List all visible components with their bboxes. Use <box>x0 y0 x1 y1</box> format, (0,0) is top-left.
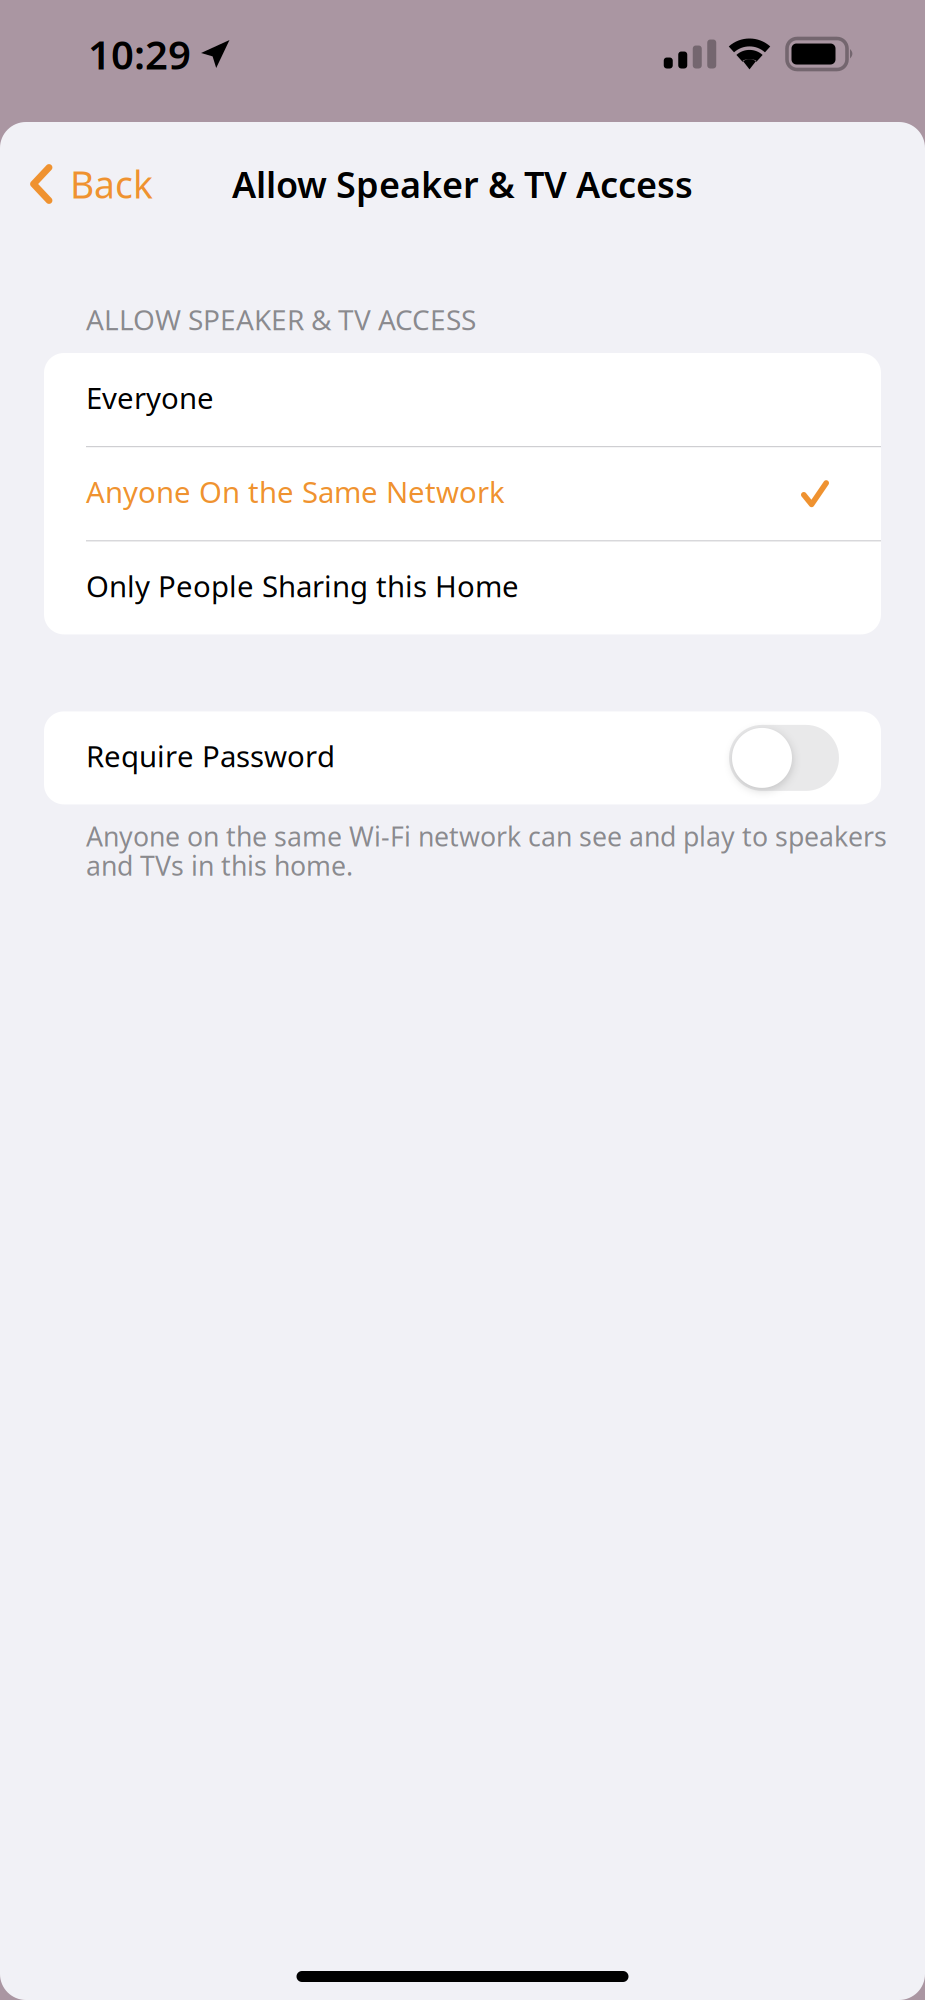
button[interactable]: Back <box>0 141 205 227</box>
button[interactable]: Only People Sharing this Home <box>44 541 881 634</box>
staticText: Anyone On the Same Network <box>86 472 505 511</box>
staticText: ALLOW SPEAKER & TV ACCESS <box>86 301 476 338</box>
staticText: Everyone <box>86 378 214 417</box>
staticText: Back <box>70 159 153 209</box>
staticText: Require Password <box>86 736 335 775</box>
staticText: Allow Speaker & TV Access <box>232 160 693 208</box>
button[interactable]: Anyone On the Same Network <box>44 447 881 540</box>
button[interactable]: Require Password <box>729 725 839 791</box>
button[interactable]: Everyone <box>44 353 881 446</box>
staticText: 10:29 <box>88 27 191 80</box>
staticText: Anyone on the same Wi-Fi network can see… <box>86 818 887 883</box>
staticText: Only People Sharing this Home <box>86 566 519 605</box>
